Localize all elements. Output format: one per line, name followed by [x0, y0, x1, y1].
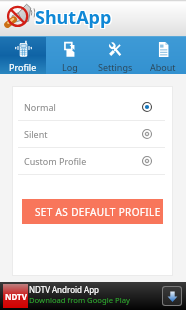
staticText: Normal: [24, 101, 56, 113]
button[interactable]: Normal: [13, 94, 172, 120]
staticText: Silent: [24, 128, 48, 140]
staticText: Settings: [98, 61, 133, 73]
staticText: Custom Profile: [24, 155, 87, 167]
staticText: ShutApp: [35, 5, 112, 30]
staticText: ShutApp: [36, 4, 113, 29]
button[interactable]: Settings: [92, 37, 139, 74]
button[interactable]: Profile: [0, 37, 46, 74]
staticText: ShutApp: [35, 6, 112, 31]
staticText: ShutApp: [36, 5, 113, 30]
button[interactable]: Log: [46, 37, 92, 74]
button[interactable]: NDTV: [0, 282, 186, 310]
staticText: NDTV: [5, 291, 27, 302]
button[interactable]: Custom Profile: [13, 148, 172, 174]
staticText: ShutApp: [34, 5, 111, 30]
staticText: SET AS DEFAULT PROFILE: [35, 205, 161, 219]
staticText: ShutApp: [36, 6, 113, 31]
staticText: Download from Google Play: [29, 295, 130, 305]
button[interactable]: About: [139, 37, 186, 74]
staticText: About: [150, 61, 176, 73]
staticText: ShutApp: [35, 4, 112, 29]
staticText: Log: [62, 61, 78, 73]
staticText: ShutApp: [34, 6, 111, 31]
staticText: Profile: [9, 61, 37, 73]
button[interactable]: Download: [163, 287, 181, 305]
staticText: ShutApp: [34, 4, 111, 29]
button[interactable]: Silent: [13, 121, 172, 147]
button[interactable]: SET AS DEFAULT PROFILE: [22, 199, 163, 224]
staticText: NDTV Android App: [29, 284, 99, 295]
